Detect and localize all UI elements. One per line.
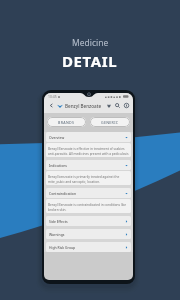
staticText: Benzyl Benzoate [65,103,102,109]
staticText: Benzyl Benzoate is effective in treatmen… [48,147,129,151]
staticText: Medicine [72,37,109,49]
staticText: 10:45 [48,94,57,99]
staticText: Side Effects [49,219,68,224]
staticText: High Risk Group [49,245,76,250]
button[interactable]: High Risk Group [46,242,131,252]
button[interactable]: Search [113,101,122,110]
staticText: DETAIL [62,51,118,71]
button[interactable]: BRANDS [47,117,86,127]
button[interactable]: Contraindication [46,188,131,198]
button[interactable]: Information [122,101,131,110]
staticText: Indications [49,163,68,168]
staticText: Benzyl benzoate is primarily treated aga… [48,175,129,179]
button[interactable]: Overview [46,132,131,142]
staticText: Warnings [49,232,65,237]
button[interactable]: Back [47,101,56,110]
button[interactable]: GENERIC [90,117,130,127]
button[interactable]: Favorite [104,101,113,110]
staticText: BRANDS [58,120,75,125]
button[interactable]: Side Effects [46,216,131,226]
staticText: Overview [49,135,65,140]
staticText: mite, pubic and sarcoptic, location. [48,180,101,184]
staticText: Contraindication [49,191,77,196]
button[interactable]: Warnings [46,229,131,239]
staticText: anti-parasitic. All medicines present wi… [48,152,129,156]
staticText: GENERIC [101,120,119,125]
button[interactable]: Indications [46,160,131,170]
staticText: Benzyl Benzoate is contraindicated in co… [48,203,127,207]
staticText: broken skin. [48,208,67,212]
